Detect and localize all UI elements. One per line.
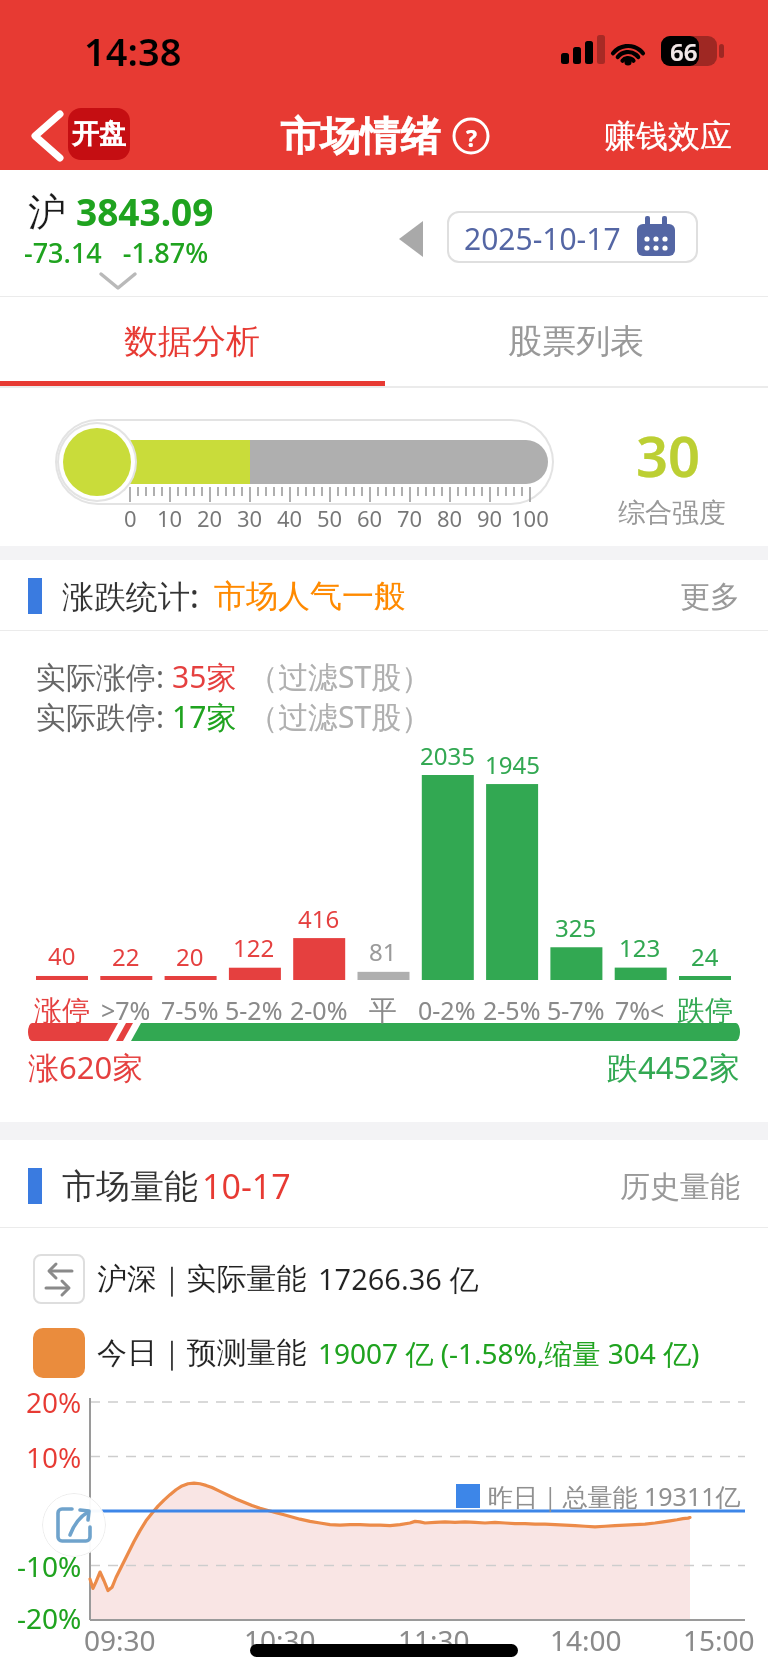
staticText: 5-7% (547, 993, 605, 1027)
staticText: 81 (369, 935, 397, 968)
staticText: 11:30 (398, 1621, 470, 1659)
staticText: 90 (477, 503, 503, 533)
staticText: ? (466, 122, 477, 153)
staticText: 66 (670, 35, 698, 68)
staticText: 开盘 (72, 117, 126, 151)
staticText: 平 (369, 993, 397, 1028)
staticText: 跌停 (677, 993, 733, 1028)
staticText: 10 (157, 503, 183, 533)
staticText: 20 (176, 940, 204, 973)
staticText: 14:00 (550, 1621, 622, 1659)
staticText: 24 (691, 940, 719, 973)
staticText: 市场情绪 (280, 111, 440, 161)
staticText: 涨停 (34, 993, 90, 1028)
staticText: 123 (619, 931, 661, 964)
staticText: 20% (26, 1383, 82, 1421)
staticText: 09:30 (84, 1621, 156, 1659)
staticText: 22 (112, 940, 140, 973)
staticText: 19007 亿 (-1.58%,缩量 304 亿) (318, 1334, 700, 1372)
staticText: 10:30 (244, 1621, 316, 1659)
staticText: 综合强度 (618, 496, 726, 530)
staticText: 10% (26, 1438, 82, 1476)
staticText: 17266.36 亿 (318, 1259, 479, 1299)
staticText: 70 (397, 503, 423, 533)
staticText: 股票列表 (508, 320, 644, 363)
staticText: 100 (511, 503, 549, 533)
staticText: 赚钱效应 (604, 116, 732, 156)
staticText: 30 (237, 503, 263, 533)
staticText: 沪 (28, 188, 66, 236)
staticText: -10% (17, 1547, 82, 1585)
staticText: 更多 (680, 578, 740, 616)
staticText: -20% (17, 1599, 82, 1637)
staticText: 实际跌停: (36, 696, 165, 737)
staticText: 325 (555, 911, 597, 944)
staticText: 2-0% (290, 993, 348, 1027)
staticText: 市场人气一般 (214, 576, 406, 616)
staticText: 数据分析 (124, 320, 260, 363)
staticText: 7-5% (161, 993, 219, 1027)
staticText: 0 (124, 503, 137, 533)
staticText: 50 (317, 503, 343, 533)
staticText: 实际涨停: (36, 656, 165, 697)
staticText: 17家 (172, 696, 237, 737)
staticText: 30 (636, 417, 701, 487)
staticText: 60 (357, 503, 383, 533)
staticText: 2-5% (483, 993, 541, 1027)
staticText: 7%< (615, 993, 665, 1027)
staticText: 10-17 (202, 1163, 291, 1209)
staticText: （过滤ST股） (248, 656, 432, 697)
staticText: >7% (101, 993, 151, 1027)
staticText: 14:38 (84, 25, 182, 77)
staticText: 20 (197, 503, 223, 533)
staticText: 1945 (485, 748, 540, 781)
staticText: 0-2% (418, 993, 476, 1027)
staticText: 40 (48, 939, 76, 972)
staticText: 今日｜预测量能 (97, 1334, 307, 1372)
staticText: 5-2% (225, 993, 283, 1027)
staticText: 跌4452家 (607, 1046, 740, 1088)
staticText: -73.14 -1.87% (24, 234, 209, 271)
staticText: 15:00 (683, 1621, 755, 1659)
staticText: 80 (437, 503, 463, 533)
staticText: 2025-10-17 (464, 218, 621, 259)
staticText: 3843.09 (76, 186, 214, 236)
staticText: 2035 (420, 739, 475, 772)
staticText: 涨620家 (28, 1046, 144, 1088)
staticText: （过滤ST股） (248, 696, 432, 737)
staticText: 416 (298, 902, 340, 935)
staticText: 涨跌统计: (62, 574, 199, 618)
staticText: 历史量能 (620, 1168, 740, 1206)
staticText: 122 (233, 931, 275, 964)
staticText: 沪深｜实际量能 (97, 1260, 307, 1298)
staticText: 35家 (172, 656, 237, 697)
staticText: 40 (277, 503, 303, 533)
staticText: 市场量能 (62, 1165, 198, 1208)
staticText: 昨日｜总量能 19311亿 (488, 1479, 741, 1513)
